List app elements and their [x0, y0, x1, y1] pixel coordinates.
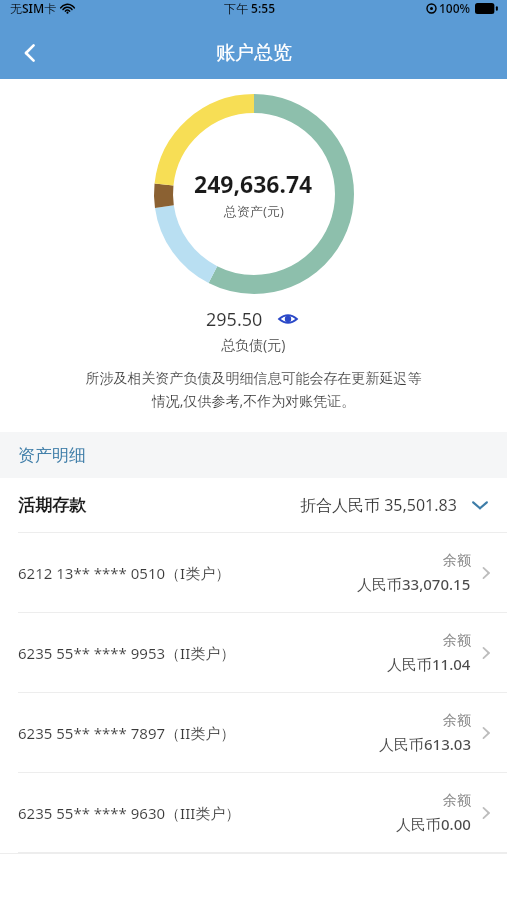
staticText: 下午 5:55 — [224, 0, 276, 16]
staticText: 6235 55** **** 7897（II类户） — [18, 723, 236, 743]
staticText: 6235 55** **** 9953（II类户） — [18, 643, 236, 663]
staticText: 100% — [439, 0, 471, 16]
staticText: 折合人民币 35,501.83 — [300, 494, 457, 516]
button[interactable]: 返回 — [8, 31, 52, 75]
staticText: 所涉及相关资产负债及明细信息可能会存在更新延迟等 情况,仅供参考,不作为对账凭证… — [28, 370, 479, 410]
staticText: 人民币11.04 — [387, 654, 471, 674]
staticText: 资产明细 — [18, 445, 86, 466]
button[interactable]: 活期存款 — [0, 478, 507, 532]
staticText: 余额 — [443, 792, 471, 810]
staticText: 余额 — [443, 552, 471, 570]
staticText: 无SIM卡 — [10, 0, 57, 16]
staticText: 人民币613.03 — [379, 734, 471, 754]
staticText: 活期存款 — [18, 495, 86, 516]
button[interactable]: 6235 55** **** 9953（II类户） — [0, 613, 507, 692]
staticText: 人民币0.00 — [396, 814, 471, 834]
staticText: 249,636.74 — [194, 168, 313, 199]
button[interactable]: 6235 55** **** 9630（III类户） — [0, 773, 507, 852]
staticText: 余额 — [443, 712, 471, 730]
button[interactable]: 显示或隐藏总负债 — [275, 306, 301, 332]
button[interactable]: 6212 13** **** 0510（I类户） — [0, 533, 507, 612]
button[interactable]: 6235 55** **** 7897（II类户） — [0, 693, 507, 772]
staticText: 人民币33,070.15 — [357, 574, 471, 594]
staticText: 总资产(元) — [224, 202, 284, 220]
staticText: 6235 55** **** 9630（III类户） — [18, 803, 241, 823]
staticText: 账户总览 — [216, 41, 292, 65]
staticText: 总负债(元) — [221, 335, 286, 354]
staticText: 295.50 — [206, 307, 263, 332]
staticText: 余额 — [443, 632, 471, 650]
staticText: 6212 13** **** 0510（I类户） — [18, 563, 231, 583]
